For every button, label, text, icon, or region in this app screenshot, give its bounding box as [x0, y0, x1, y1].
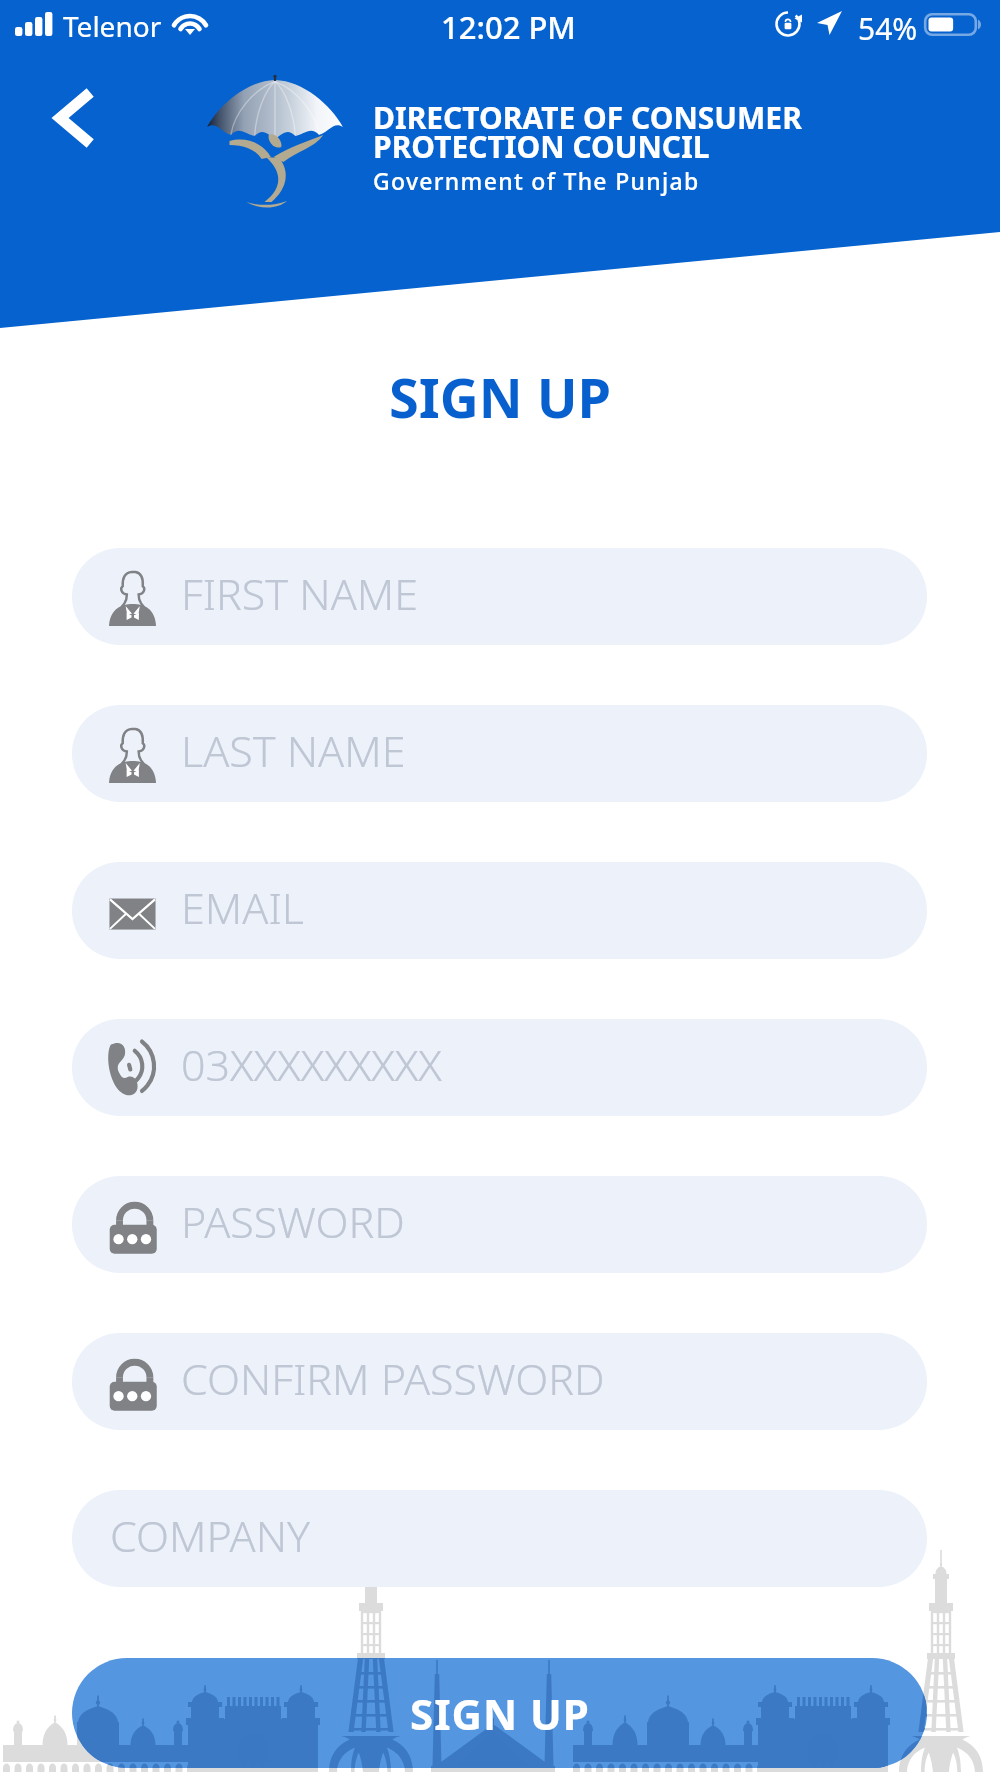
staticText: LAST NAME: [181, 721, 406, 780]
staticText: CONFIRM PASSWORD: [181, 1349, 605, 1408]
staticText: SIGN UP: [389, 360, 612, 434]
button[interactable]: LAST NAME: [72, 705, 927, 802]
staticText: COMPANY: [110, 1506, 311, 1565]
staticText: DIRECTORATE OF CONSUMER: [373, 97, 802, 138]
staticText: PASSWORD: [181, 1192, 405, 1251]
staticText: SIGN UP: [410, 1685, 590, 1742]
button[interactable]: SIGN UP: [72, 1658, 927, 1768]
button[interactable]: CONFIRM PASSWORD: [72, 1333, 927, 1430]
button[interactable]: COMPANY: [72, 1490, 927, 1587]
staticText: 54%: [858, 8, 918, 49]
button[interactable]: 03XXXXXXXXX: [72, 1019, 927, 1116]
staticText: 12:02 PM: [441, 6, 576, 48]
staticText: Government of The Punjab: [373, 165, 700, 196]
staticText: EMAIL: [181, 878, 304, 937]
button[interactable]: PASSWORD: [72, 1176, 927, 1273]
button[interactable]: FIRST NAME: [72, 548, 927, 645]
staticText: FIRST NAME: [181, 564, 419, 623]
staticText: 03XXXXXXXXX: [181, 1035, 442, 1094]
button[interactable]: EMAIL: [72, 862, 927, 959]
button[interactable]: Back: [36, 82, 108, 154]
staticText: PROTECTION COUNCIL: [373, 126, 710, 167]
staticText: Telenor: [63, 7, 162, 45]
